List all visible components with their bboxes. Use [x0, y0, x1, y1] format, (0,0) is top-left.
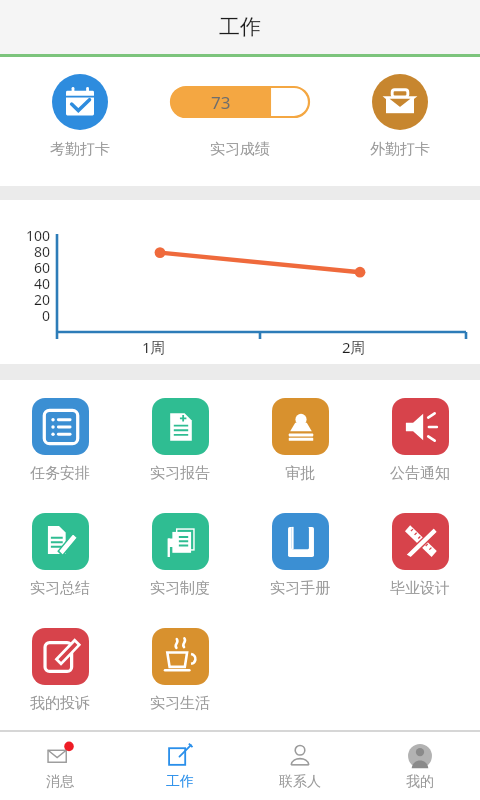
button[interactable]: 实习制度 [120, 501, 240, 616]
other: 联系人 [287, 743, 313, 769]
staticText: 消息 [46, 773, 74, 791]
staticText: 40 [34, 274, 51, 293]
staticText: 联系人 [279, 773, 321, 791]
button[interactable]: 消息 [0, 732, 120, 800]
button[interactable]: 联系人 [240, 732, 360, 800]
staticText: 100 [26, 226, 51, 245]
other: 消息 [47, 743, 73, 769]
staticText: 73 [211, 91, 231, 114]
staticText: 60 [34, 258, 51, 277]
staticText: 外勤打卡 [370, 140, 430, 159]
staticText: 任务安排 [30, 464, 90, 483]
staticText: 工作 [166, 773, 194, 791]
staticText: 80 [34, 242, 51, 261]
button[interactable]: 我的 [360, 732, 480, 800]
staticText: 工作 [219, 14, 261, 40]
staticText: 公告通知 [390, 464, 450, 483]
other: 我的 [407, 743, 433, 769]
button[interactable]: 实习手册 [240, 501, 360, 616]
button[interactable]: 工作 [120, 732, 240, 800]
staticText: 毕业设计 [390, 579, 450, 598]
staticText: 实习报告 [150, 464, 210, 483]
staticText: 0 [42, 306, 51, 325]
staticText: 实习总结 [30, 579, 90, 598]
other: 外勤打卡 [372, 74, 428, 130]
button[interactable]: 任务安排 [0, 386, 120, 501]
button[interactable]: 实习总结 [0, 501, 120, 616]
other: 考勤打卡 [52, 74, 108, 130]
button[interactable]: 73 [160, 57, 320, 186]
button[interactable]: 外勤打卡 [320, 57, 480, 186]
staticText: 实习成绩 [210, 140, 270, 159]
button[interactable]: 实习生活 [120, 616, 240, 730]
button[interactable]: 毕业设计 [360, 501, 480, 616]
staticText: 2周 [342, 337, 366, 357]
staticText: 我的投诉 [30, 694, 90, 713]
staticText: 审批 [285, 464, 315, 483]
button[interactable]: 公告通知 [360, 386, 480, 501]
staticText: 考勤打卡 [50, 140, 110, 159]
staticText: 我的 [406, 773, 434, 791]
button[interactable]: 实习报告 [120, 386, 240, 501]
staticText: 1周 [142, 337, 166, 357]
other: 工作 [167, 743, 193, 769]
staticText: 实习手册 [270, 579, 330, 598]
staticText: 20 [34, 290, 51, 309]
button[interactable]: 审批 [240, 386, 360, 501]
staticText: 实习生活 [150, 694, 210, 713]
staticText: 实习制度 [150, 579, 210, 598]
button[interactable]: 考勤打卡 [0, 57, 160, 186]
button[interactable]: 我的投诉 [0, 616, 120, 730]
